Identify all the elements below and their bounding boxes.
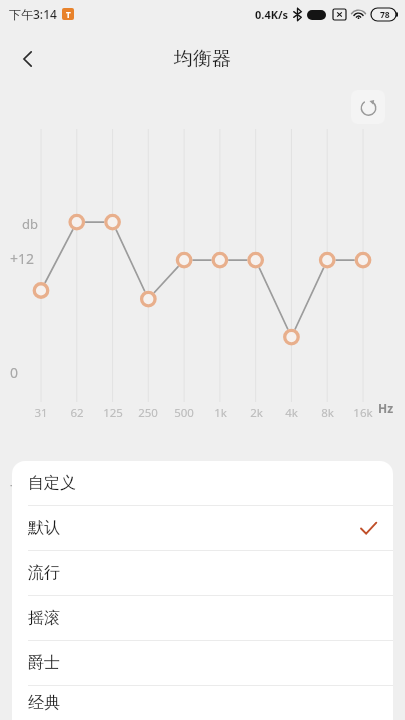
staticText: 2k [250, 405, 263, 421]
staticText: 500 [174, 405, 194, 421]
staticText: 默认 [28, 518, 60, 538]
button[interactable]: Back [6, 37, 50, 81]
staticText: 自定义 [28, 473, 76, 493]
staticText: 0 [10, 363, 19, 382]
staticText: Hz [378, 400, 394, 416]
staticText: -12 [10, 475, 31, 494]
staticText: 4k [285, 405, 298, 421]
staticText: 78 [380, 9, 390, 21]
button[interactable]: 流行 [12, 551, 393, 595]
staticText: 爵士 [28, 653, 60, 673]
staticText: 1k [214, 405, 227, 421]
button[interactable]: 默认 [12, 506, 393, 550]
staticText: 62 [70, 405, 84, 421]
staticText: db [22, 215, 38, 233]
button[interactable]: 自定义 [12, 461, 393, 505]
staticText: 125 [103, 405, 123, 421]
staticText: T [66, 9, 71, 20]
staticText: 摇滚 [28, 608, 60, 628]
staticText: 下午3:14 [9, 6, 57, 22]
staticText: 流行 [28, 563, 60, 583]
staticText: 0.4K/s [255, 7, 289, 22]
staticText: 8k [321, 405, 334, 421]
button[interactable]: 经典 [12, 686, 393, 720]
staticText: 经典 [28, 693, 60, 713]
staticText: 均衡器 [174, 47, 231, 71]
button[interactable]: 爵士 [12, 641, 393, 685]
staticText: +12 [10, 249, 35, 268]
staticText: 250 [138, 405, 158, 421]
button[interactable]: 摇滚 [12, 596, 393, 640]
staticText: 31 [34, 405, 48, 421]
staticText: 16k [353, 405, 373, 421]
button[interactable]: Reset equalizer [351, 90, 385, 124]
